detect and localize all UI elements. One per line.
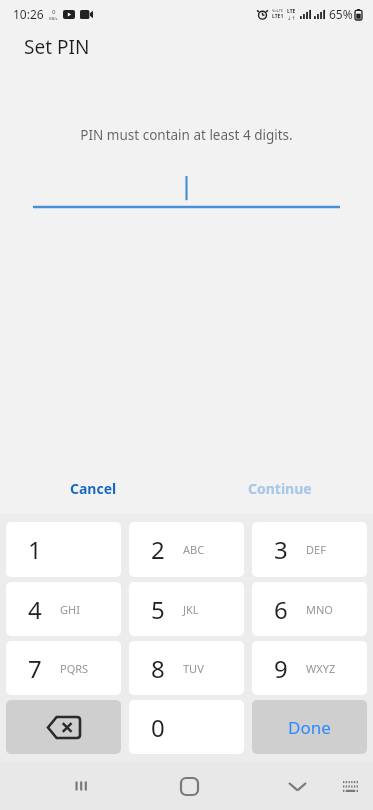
staticText: TUV bbox=[183, 661, 204, 676]
button[interactable]: Cancel bbox=[0, 462, 186, 514]
staticText: WXYZ bbox=[306, 661, 336, 676]
button[interactable]: 4 bbox=[6, 582, 121, 636]
button[interactable]: 9 bbox=[252, 641, 367, 695]
staticText: 1 bbox=[28, 533, 42, 566]
button[interactable]: 0 bbox=[129, 700, 244, 754]
button[interactable]: Recent apps bbox=[60, 764, 104, 808]
staticText: LTE bbox=[287, 8, 296, 15]
button[interactable]: Hide keyboard bbox=[275, 764, 319, 808]
button[interactable]: Continue bbox=[186, 462, 373, 514]
staticText: 9 bbox=[274, 652, 288, 685]
staticText: Set PIN bbox=[24, 34, 90, 60]
button[interactable] bbox=[33, 174, 340, 208]
button[interactable]: Done bbox=[252, 700, 367, 754]
button[interactable]: 8 bbox=[129, 641, 244, 695]
staticText: LTE1 bbox=[272, 13, 284, 20]
staticText: 6 bbox=[274, 593, 288, 626]
staticText: 3 bbox=[274, 533, 288, 566]
staticText: Done bbox=[288, 716, 331, 739]
button[interactable]: 1 bbox=[6, 522, 121, 577]
staticText: ↓↑ bbox=[287, 15, 296, 21]
staticText: PQRS bbox=[60, 661, 89, 676]
staticText: 8 bbox=[151, 652, 165, 685]
staticText: 2 bbox=[151, 533, 165, 566]
staticText: ABC bbox=[183, 542, 205, 557]
button[interactable]: 5 bbox=[129, 582, 244, 636]
button[interactable]: 2 bbox=[129, 522, 244, 577]
button[interactable]: Switch keyboard bbox=[333, 769, 367, 803]
staticText: Cancel bbox=[70, 479, 117, 498]
button[interactable]: 6 bbox=[252, 582, 367, 636]
staticText: Continue bbox=[248, 479, 312, 498]
staticText: MNO bbox=[306, 602, 333, 617]
staticText: 0 bbox=[151, 711, 165, 744]
staticText: VoLTE bbox=[272, 8, 284, 13]
button[interactable]: 3 bbox=[252, 522, 367, 577]
staticText: 7 bbox=[28, 652, 42, 685]
staticText: JKL bbox=[183, 602, 199, 617]
button[interactable]: 7 bbox=[6, 641, 121, 695]
staticText: GHI bbox=[60, 602, 80, 617]
staticText: 5 bbox=[151, 593, 165, 626]
staticText: DEF bbox=[306, 542, 326, 557]
staticText: 4 bbox=[28, 593, 42, 626]
staticText: 65% bbox=[329, 6, 353, 22]
staticText: PIN must contain at least 4 digits. bbox=[80, 126, 293, 144]
button[interactable]: Home bbox=[167, 764, 211, 808]
staticText: 0 bbox=[52, 8, 56, 16]
button[interactable]: Backspace bbox=[6, 700, 121, 754]
staticText: KB/s bbox=[49, 16, 58, 21]
staticText: 10:26 bbox=[13, 6, 44, 22]
